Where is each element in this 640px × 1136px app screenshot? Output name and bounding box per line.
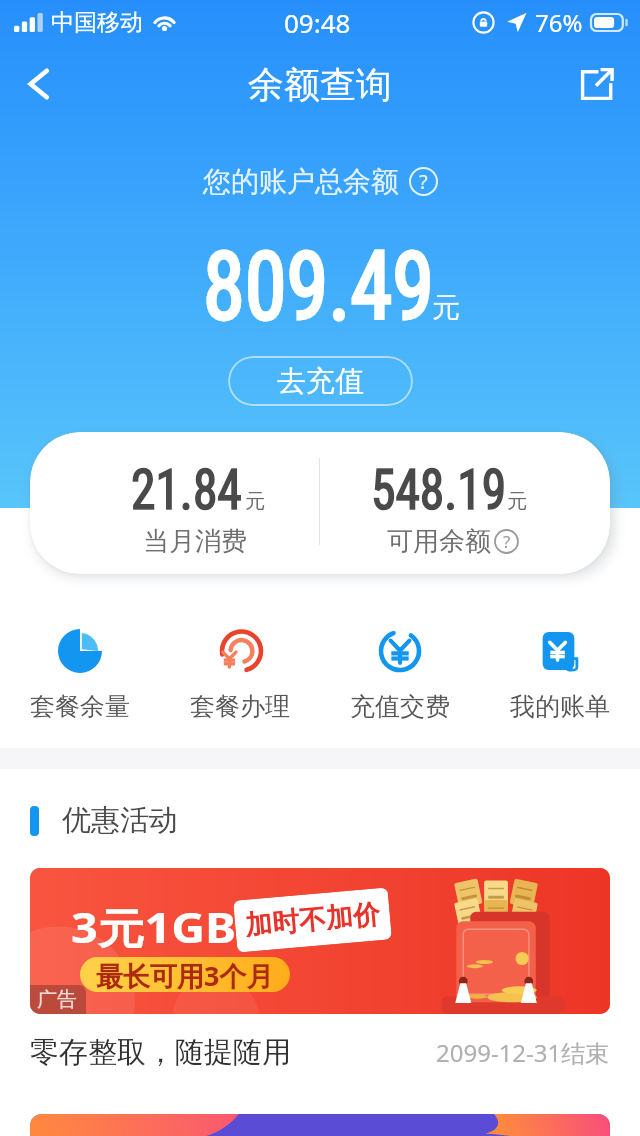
button[interactable]: 我的账单	[480, 629, 640, 722]
staticText: 您的账户总余额	[203, 164, 399, 199]
staticText: 当月消费	[143, 525, 247, 558]
staticText: 76%	[535, 6, 583, 39]
staticText: 元	[507, 489, 527, 514]
staticText: 套餐余量	[30, 691, 130, 722]
staticText: 去充值	[277, 363, 364, 400]
staticText: 21.84	[131, 458, 243, 522]
button[interactable]: Back	[8, 53, 70, 115]
staticText: 零存整取，随提随用	[30, 1034, 291, 1071]
staticText: 09:48	[284, 5, 351, 40]
button[interactable]: 套餐余量	[0, 629, 160, 722]
staticText: 809.49	[203, 232, 434, 342]
button[interactable]: 套餐办理	[160, 629, 320, 722]
staticText: 余额查询	[248, 62, 392, 107]
button[interactable]: 去充值	[228, 356, 413, 406]
staticText: 548.19	[371, 458, 507, 522]
staticText: 3元1GB	[71, 899, 236, 955]
staticText: ?	[503, 530, 511, 553]
button[interactable]	[30, 1114, 610, 1136]
staticText: ?	[419, 168, 428, 195]
staticText: 广告	[37, 987, 77, 1012]
staticText: 中国移动	[51, 8, 143, 37]
staticText: 套餐办理	[190, 691, 290, 722]
staticText: 加时不加价	[244, 897, 381, 943]
staticText: 我的账单	[510, 691, 610, 722]
staticText: 可用余额	[387, 525, 491, 558]
staticText: 2099-12-31结束	[436, 1036, 610, 1069]
button[interactable]: Share	[566, 53, 628, 115]
button[interactable]: 21.84	[30, 432, 610, 574]
staticText: 元	[432, 290, 460, 325]
staticText: 最长可用3个月	[96, 957, 274, 992]
staticText: 元	[245, 489, 265, 514]
staticText: 优惠活动	[62, 802, 178, 839]
button[interactable]: 3元1GB	[30, 868, 610, 1014]
button[interactable]: Help	[409, 167, 438, 196]
button[interactable]: 充值交费	[320, 629, 480, 722]
staticText: 充值交费	[350, 691, 450, 722]
